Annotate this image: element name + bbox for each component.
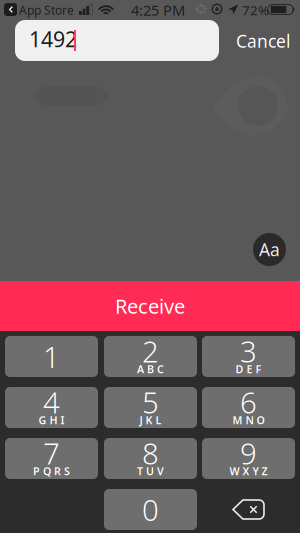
staticText: 4:25 PM [131,0,185,20]
staticText: 6 [240,382,257,421]
button[interactable]: 6 [202,387,295,428]
button[interactable]: 5 [104,387,197,428]
button[interactable]: Receive [0,281,300,331]
staticText: D E F [235,362,261,376]
staticText: W X Y Z [229,464,267,478]
staticText: M N O [232,413,264,427]
button[interactable]: 7 [5,438,98,479]
staticText: 5 [142,382,159,421]
button[interactable]: Text size [253,233,286,266]
button[interactable]: 8 [104,438,197,479]
staticText: T U V [137,464,164,478]
staticText: G H I [38,413,64,427]
staticText: 2 [142,331,159,370]
button[interactable]: 4 [5,387,98,428]
staticText: 72% [242,1,269,19]
staticText: 4 [43,382,60,421]
staticText: P Q R S [33,464,70,478]
staticText: 3 [240,331,257,370]
button[interactable]: 0 [104,489,197,530]
staticText: 1492 [29,25,77,53]
staticText: 0 [142,490,159,529]
staticText: A B C [137,362,164,376]
button[interactable]: Delete [202,489,295,530]
button[interactable]: 2 [104,336,197,377]
staticText: Receive [115,293,185,319]
staticText: Aa [259,238,280,261]
staticText: 7 [43,433,60,472]
staticText: 8 [142,433,159,472]
button[interactable]: 3 [202,336,295,377]
staticText: Cancel [236,29,290,52]
staticText: App Store [19,2,74,18]
button[interactable]: 1 [5,336,98,377]
button[interactable]: 9 [202,438,295,479]
staticText: 9 [240,433,257,472]
button[interactable]: Cancel [236,27,298,55]
staticText: J K L [139,413,161,427]
staticText: 1 [43,337,60,376]
